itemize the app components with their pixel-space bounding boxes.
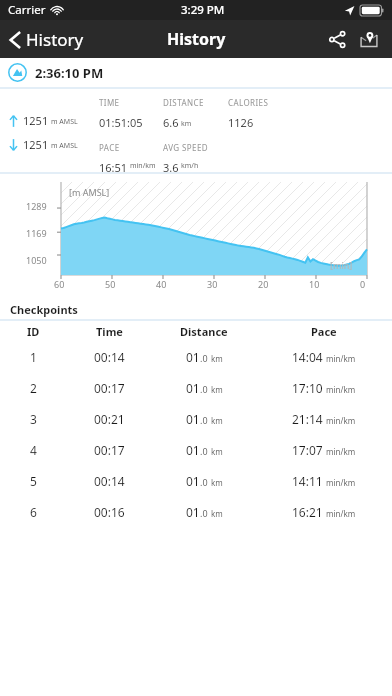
staticText: 6 — [30, 504, 37, 520]
staticText: km — [211, 384, 223, 395]
staticText: Time — [96, 324, 123, 339]
staticText: 1 — [30, 349, 37, 365]
staticText: min/km — [130, 161, 156, 171]
staticText: km — [211, 415, 223, 426]
staticText: 00:16 — [94, 504, 125, 520]
staticText: 1289 — [26, 200, 47, 212]
staticText: 5 — [30, 473, 37, 489]
staticText: km — [211, 353, 223, 364]
staticText: 3.6 — [163, 160, 179, 172]
staticText: min/km — [326, 415, 356, 426]
staticText: 01 — [186, 380, 200, 396]
staticText: 01:51:05 — [99, 115, 143, 130]
button[interactable]: 2 — [0, 372, 392, 403]
staticText: Checkpoints — [10, 302, 78, 317]
button[interactable]: 2:36:10 PM — [0, 58, 392, 87]
staticText: 01 — [186, 349, 200, 365]
staticText: AVG SPEED — [163, 142, 208, 153]
staticText: 20 — [258, 278, 269, 290]
staticText: 14:11 — [292, 473, 323, 489]
staticText: min/km — [326, 508, 356, 519]
staticText: 17:07 — [292, 442, 323, 458]
staticText: 30 — [207, 278, 218, 290]
staticText: 1126 — [228, 115, 254, 130]
staticText: 4 — [30, 442, 37, 458]
button[interactable]: History — [0, 24, 94, 55]
staticText: 3 — [30, 411, 37, 427]
staticText: 21:14 — [292, 411, 323, 427]
staticText: [m AMSL] — [69, 186, 110, 198]
staticText: TIME — [99, 97, 120, 108]
staticText: 01 — [186, 411, 200, 427]
staticText: km — [211, 508, 223, 519]
staticText: 17:10 — [292, 380, 323, 396]
staticText: 2:36:10 PM — [35, 64, 104, 82]
staticText: DISTANCE — [163, 97, 204, 108]
staticText: min/km — [326, 384, 356, 395]
button[interactable]: 5 — [0, 465, 392, 496]
staticText: 2 — [30, 380, 37, 396]
staticText: 00:14 — [94, 349, 125, 365]
staticText: 00:21 — [94, 411, 125, 427]
staticText: [min] — [330, 259, 353, 271]
staticText: Carrier — [8, 2, 46, 18]
staticText: 0 — [360, 278, 366, 290]
staticText: ID — [27, 324, 40, 339]
staticText: 3:29 PM — [181, 2, 225, 18]
staticText: 1251 — [23, 113, 49, 128]
button[interactable]: Map — [354, 24, 384, 54]
staticText: 1169 — [26, 227, 47, 239]
staticText: .0 — [200, 476, 208, 488]
staticText: m AMSL — [51, 117, 78, 127]
staticText: History — [167, 28, 226, 50]
staticText: 01 — [186, 442, 200, 458]
button[interactable]: 1 — [0, 341, 392, 372]
staticText: 1050 — [26, 254, 47, 266]
button[interactable]: 3 — [0, 403, 392, 434]
button[interactable]: 6 — [0, 496, 392, 527]
staticText: km — [211, 477, 223, 488]
staticText: 10 — [309, 278, 320, 290]
staticText: km/h — [181, 161, 199, 171]
staticText: 50 — [105, 278, 116, 290]
staticText: min/km — [326, 353, 356, 364]
staticText: CALORIES — [228, 97, 269, 108]
staticText: 6.6 — [163, 115, 179, 130]
staticText: .0 — [200, 383, 208, 395]
staticText: 16:51 — [99, 160, 128, 172]
staticText: m AMSL — [51, 141, 78, 151]
staticText: 60 — [54, 278, 65, 290]
staticText: .0 — [200, 507, 208, 519]
staticText: 00:17 — [94, 442, 125, 458]
button[interactable]: 4 — [0, 434, 392, 465]
staticText: 00:17 — [94, 380, 125, 396]
staticText: min/km — [326, 446, 356, 457]
staticText: Pace — [311, 324, 337, 339]
staticText: Distance — [180, 324, 228, 339]
staticText: km — [181, 119, 192, 129]
staticText: 01 — [186, 504, 200, 520]
staticText: min/km — [326, 477, 356, 488]
button[interactable]: Share — [323, 25, 352, 54]
staticText: 14:04 — [292, 349, 323, 365]
staticText: 01 — [186, 473, 200, 489]
staticText: 00:14 — [94, 473, 125, 489]
staticText: 40 — [156, 278, 167, 290]
staticText: History — [26, 28, 84, 51]
staticText: .0 — [200, 445, 208, 457]
staticText: 16:21 — [292, 504, 323, 520]
staticText: .0 — [200, 352, 208, 364]
staticText: km — [211, 446, 223, 457]
staticText: .0 — [200, 414, 208, 426]
staticText: 1251 — [23, 137, 49, 152]
staticText: PACE — [99, 142, 120, 153]
